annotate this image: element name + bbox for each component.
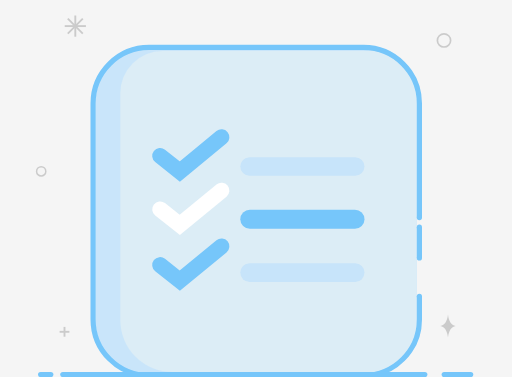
button[interactable]: Task 1, completed	[150, 134, 370, 180]
button[interactable]: Task 3, completed	[150, 242, 370, 288]
button[interactable]: Task 2, completed	[150, 187, 370, 233]
